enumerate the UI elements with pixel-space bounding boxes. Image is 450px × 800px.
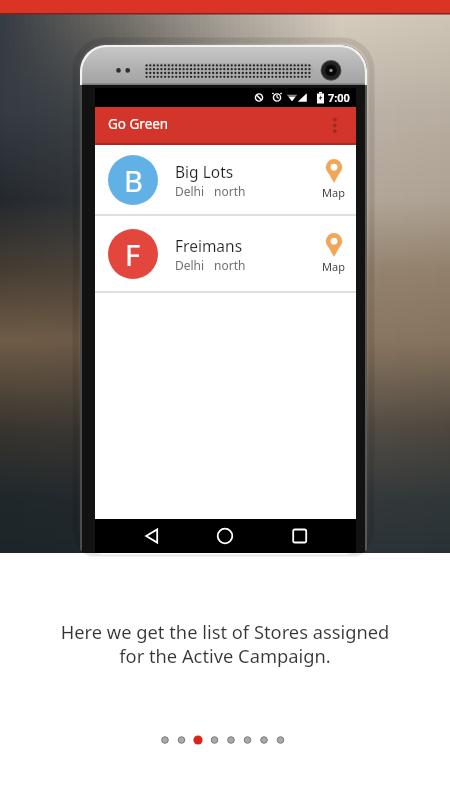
button[interactable]: Map <box>322 233 345 274</box>
staticText: B <box>124 161 143 200</box>
staticText: Delhi <box>175 257 205 273</box>
button[interactable]: Map <box>322 159 345 200</box>
staticText: Go Green <box>108 115 169 133</box>
button[interactable]: B <box>95 145 356 214</box>
staticText: Here we get the list of Stores assigned … <box>0 619 450 669</box>
button[interactable]: F <box>95 216 356 291</box>
staticText: Map <box>322 185 345 200</box>
staticText: Delhi <box>175 183 205 199</box>
staticText: Big Lots <box>175 161 234 182</box>
staticText: Freimans <box>175 235 243 256</box>
staticText: 7:00 <box>328 90 350 105</box>
staticText: north <box>214 257 246 273</box>
staticText: Map <box>322 259 345 274</box>
button[interactable] <box>95 107 356 143</box>
staticText: north <box>214 183 246 199</box>
staticText: F <box>125 235 141 274</box>
